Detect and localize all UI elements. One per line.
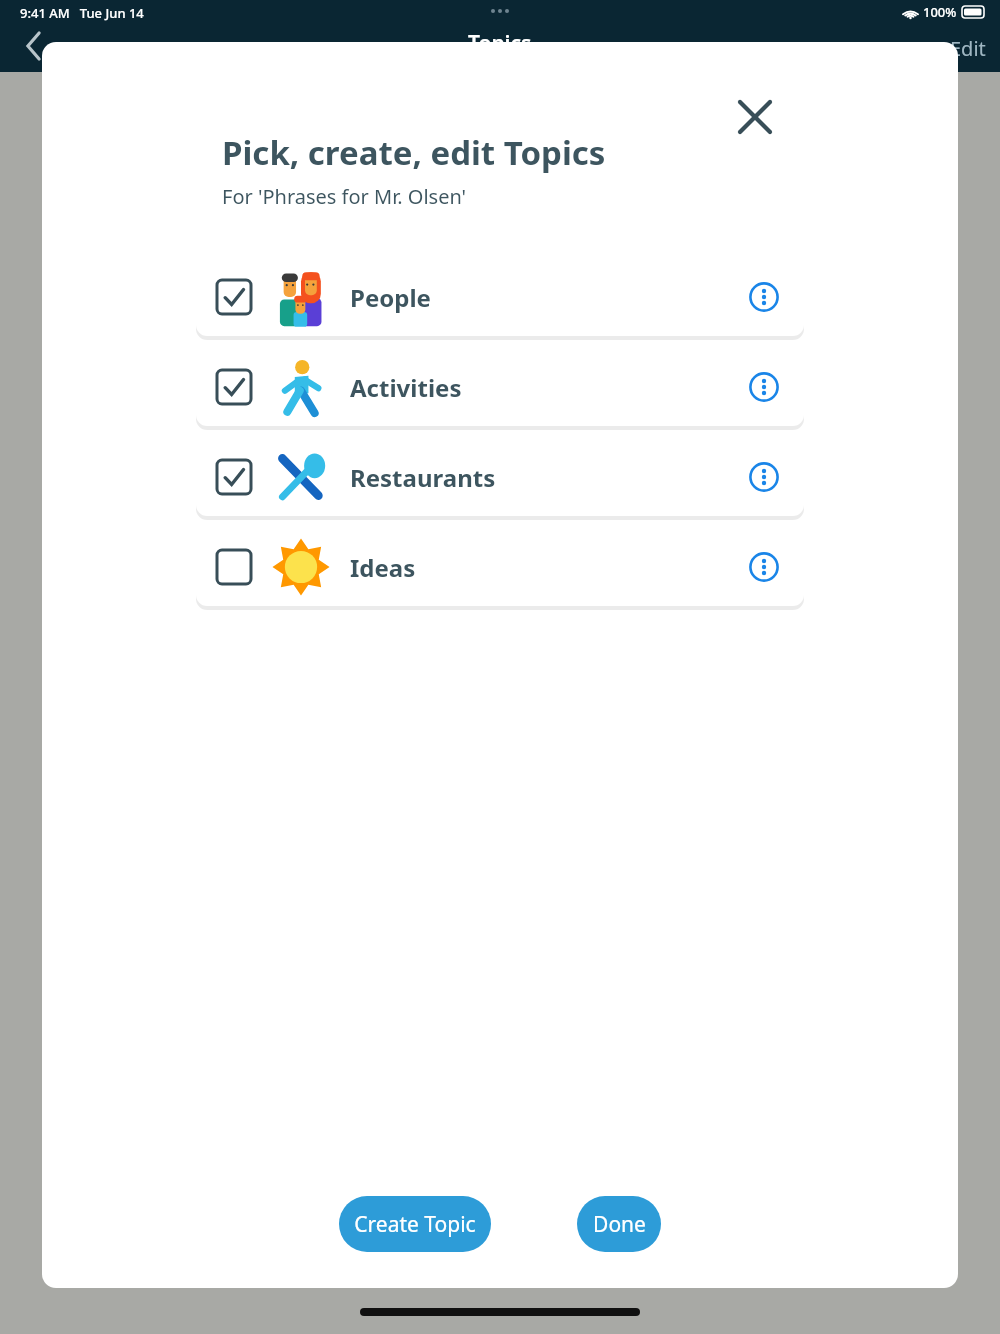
button[interactable]: Toggle Activities [196, 348, 804, 426]
button[interactable]: Toggle People [212, 275, 256, 319]
staticText: Activities [350, 371, 462, 404]
button[interactable]: More options for Ideas [738, 541, 790, 593]
button[interactable]: More options for Activities [738, 361, 790, 413]
staticText: Done [593, 1210, 646, 1239]
button[interactable]: Toggle People [196, 258, 804, 336]
button[interactable]: More options for People [738, 271, 790, 323]
button[interactable]: Toggle Activities [212, 365, 256, 409]
button[interactable]: Create Topic [339, 1196, 491, 1252]
button[interactable]: Toggle Restaurants [212, 455, 256, 499]
button[interactable]: More options for Restaurants [738, 451, 790, 503]
staticText: Restaurants [350, 461, 496, 494]
staticText: Create Topic [354, 1210, 476, 1239]
staticText: Topics [468, 29, 532, 58]
staticText: Ideas [350, 551, 416, 584]
button[interactable]: Done [577, 1196, 661, 1252]
button[interactable]: Toggle Ideas [196, 528, 804, 606]
button[interactable]: Toggle Ideas [212, 545, 256, 589]
staticText: 9:41 AM Tue Jun 14 [20, 4, 144, 22]
staticText: 100% [923, 3, 957, 21]
staticText: Pick, create, edit Topics [222, 130, 606, 175]
button[interactable]: Toggle Restaurants [196, 438, 804, 516]
staticText: For 'Phrases for Mr. Olsen' [222, 183, 467, 210]
staticText: Edit [950, 35, 986, 62]
button[interactable]: Close [728, 90, 782, 144]
button[interactable]: Back [12, 24, 56, 68]
staticText: People [350, 281, 431, 314]
button[interactable]: Edit [950, 35, 986, 62]
